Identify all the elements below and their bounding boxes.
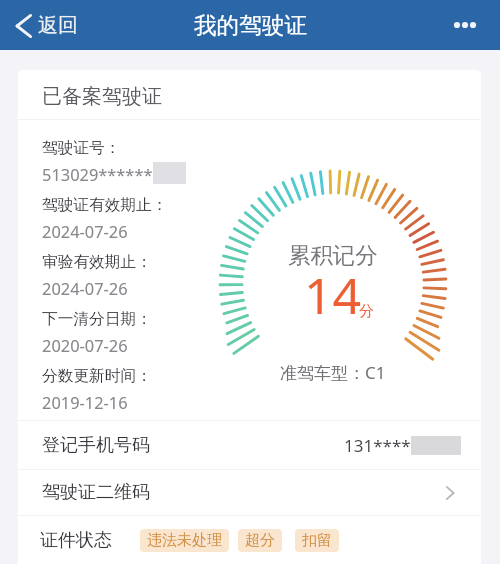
button[interactable]: 返回 — [15, 13, 78, 38]
button[interactable]: 驾驶证二维码 — [18, 470, 481, 515]
staticText: 违法未处理 — [147, 531, 222, 550]
staticText: 513029****** — [42, 163, 153, 185]
staticText: 扣留 — [302, 531, 332, 550]
staticText: 返回 — [38, 13, 78, 38]
staticText: 2024-07-26 — [42, 220, 128, 242]
staticText: 驾驶证二维码 — [42, 481, 150, 504]
staticText: 2019-12-16 — [42, 391, 128, 413]
staticText: 审验有效期止： — [42, 252, 152, 272]
staticText: 准驾车型：C1 — [280, 361, 386, 384]
staticText: 驾驶证号： — [42, 138, 121, 158]
staticText: 分数更新时间： — [42, 366, 152, 386]
staticText: 证件状态 — [40, 529, 112, 552]
staticText: 我的驾驶证 — [194, 11, 307, 39]
staticText: 下一清分日期： — [42, 309, 152, 329]
staticText: 131**** — [344, 434, 411, 457]
staticText: 驾驶证有效期止： — [42, 195, 168, 215]
staticText: 已备案驾驶证 — [42, 84, 162, 109]
button[interactable]: 登记手机号码 — [18, 421, 481, 469]
staticText: 分 — [359, 302, 374, 321]
other: Open QR code — [150, 484, 459, 502]
button[interactable]: More options — [445, 5, 485, 45]
staticText: 2020-07-26 — [42, 334, 128, 356]
staticText: 登记手机号码 — [42, 434, 150, 457]
staticText: 2024-07-26 — [42, 277, 128, 299]
staticText: 累积记分 — [288, 241, 378, 269]
staticText: 超分 — [245, 531, 275, 550]
staticText: 14 — [304, 261, 362, 317]
